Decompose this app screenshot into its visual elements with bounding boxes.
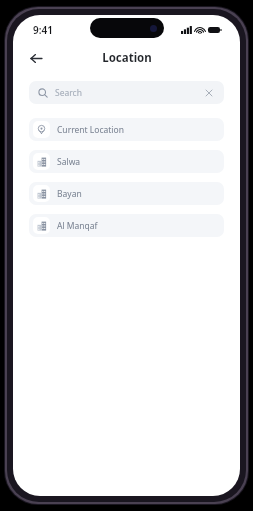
staticText: Salwa [57,156,81,168]
button[interactable]: Search [29,81,224,104]
button[interactable]: Back [23,45,49,71]
staticText: 9:41 [33,23,53,37]
staticText: Search [55,87,82,99]
button[interactable]: Clear search [203,87,215,99]
staticText: Current Location [57,124,124,136]
staticText: Location [102,50,152,66]
staticText: Al Manqaf [57,220,98,232]
button[interactable]: Bayan [29,182,224,205]
button[interactable]: Al Manqaf [29,214,224,237]
staticText: Bayan [57,188,82,200]
button[interactable]: Salwa [29,150,224,173]
button[interactable]: Current Location [29,118,224,141]
